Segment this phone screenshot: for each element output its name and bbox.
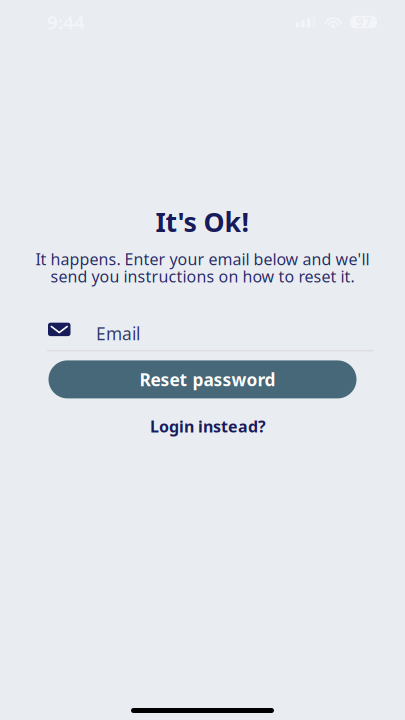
button[interactable]: Email xyxy=(47,320,374,351)
staticText: 97 xyxy=(356,13,372,31)
staticText: Email xyxy=(96,322,140,345)
staticText: Reset password xyxy=(139,368,275,391)
button[interactable]: Login instead? xyxy=(112,415,292,437)
button[interactable]: Reset password xyxy=(48,360,356,398)
staticText: It's Ok! xyxy=(155,204,249,239)
staticText: Login instead? xyxy=(150,416,266,437)
staticText: It happens. Enter your email below and w… xyxy=(35,248,369,270)
staticText: send you instructions on how to reset it… xyxy=(50,266,354,287)
staticText: 9:44 xyxy=(47,10,85,34)
